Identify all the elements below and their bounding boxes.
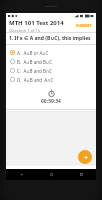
button[interactable]: Back xyxy=(6,169,36,180)
button[interactable]: B. A∪B and B∪C xyxy=(6,57,96,66)
staticText: SUBMIT xyxy=(76,23,92,28)
staticText: D. A∪B and A∩C xyxy=(17,77,54,83)
staticText: C. A∪B and B∩C xyxy=(17,68,52,74)
button[interactable]: D. A∪B and A∩C xyxy=(6,75,96,84)
staticText: MTH 101 Test 2014 xyxy=(9,19,64,27)
button[interactable]: Home xyxy=(36,169,66,180)
staticText: 1. If x ∈ A and (B∪C), this implies that… xyxy=(9,35,93,42)
staticText: A. A∪B or A∪C xyxy=(17,50,49,56)
staticText: 00:59:34 xyxy=(41,98,61,105)
staticText: B. A∪B and B∪C xyxy=(17,59,52,65)
staticText: Question 1 of 15 xyxy=(9,28,40,32)
button[interactable]: A. A∪B or A∪C xyxy=(6,48,96,57)
button[interactable]: SUBMIT xyxy=(75,22,93,29)
button[interactable]: Recent apps xyxy=(66,169,96,180)
button[interactable]: C. A∪B and B∩C xyxy=(6,66,96,75)
button[interactable]: Next question xyxy=(78,150,92,164)
